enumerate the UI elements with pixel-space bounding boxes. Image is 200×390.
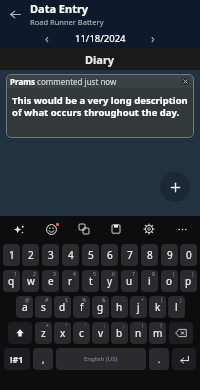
- staticText: 4: [73, 271, 76, 278]
- button[interactable]: b: [111, 322, 128, 344]
- button[interactable]: m: [149, 322, 166, 344]
- staticText: p: [185, 274, 192, 288]
- button[interactable]: English (US): [56, 348, 146, 370]
- staticText: u: [126, 274, 133, 288]
- button[interactable]: i: [141, 270, 158, 292]
- staticText: e: [48, 274, 54, 288]
- button[interactable]: 4: [62, 244, 79, 266]
- staticText: ‹: [45, 30, 49, 46]
- staticText: r: [68, 274, 73, 288]
- staticText: y: [107, 274, 113, 288]
- button[interactable]: [169, 322, 193, 344]
- staticText: 3: [48, 248, 54, 262]
- staticText: Diary: [85, 52, 115, 67]
- staticText: +: [141, 297, 144, 304]
- button[interactable]: 6: [101, 244, 118, 266]
- button[interactable]: w: [22, 270, 39, 292]
- button[interactable]: 9: [161, 244, 178, 266]
- staticText: #: [45, 297, 49, 304]
- staticText: 5: [88, 248, 94, 262]
- button[interactable]: o: [161, 270, 178, 292]
- button[interactable]: y: [101, 270, 118, 292]
- staticText: o: [166, 274, 173, 288]
- button[interactable]: Add entry: [160, 172, 190, 202]
- button[interactable]: 0: [180, 244, 197, 266]
- staticText: a: [22, 300, 28, 314]
- button[interactable]: l: [168, 296, 185, 318]
- staticText: f: [80, 300, 84, 314]
- staticText: t: [89, 274, 93, 288]
- staticText: 5: [93, 271, 96, 278]
- button[interactable]: j: [130, 296, 147, 318]
- staticText: s: [41, 300, 46, 314]
- staticText: m: [153, 326, 163, 340]
- button[interactable]: 5: [82, 244, 99, 266]
- button[interactable]: 7: [121, 244, 138, 266]
- button[interactable]: 2: [22, 244, 39, 266]
- button[interactable]: g: [92, 296, 109, 318]
- button[interactable]: Translate: [74, 219, 94, 239]
- staticText: 6: [107, 248, 113, 262]
- staticText: *: [46, 323, 49, 330]
- button[interactable]: r: [62, 270, 79, 292]
- staticText: w: [27, 274, 35, 288]
- staticText: 7: [127, 248, 133, 262]
- staticText: d: [59, 300, 66, 314]
- staticText: x: [60, 326, 66, 340]
- button[interactable]: h: [111, 296, 128, 318]
- button[interactable]: q: [3, 270, 20, 292]
- button[interactable]: Next day: [144, 29, 162, 47]
- button[interactable]: !#1: [4, 348, 30, 370]
- button[interactable]: Delete: [181, 77, 190, 86]
- staticText: ,: [42, 353, 45, 365]
- staticText: 8: [152, 271, 155, 278]
- staticText: 11/18/2024: [75, 32, 126, 45]
- button[interactable]: 8: [141, 244, 158, 266]
- button[interactable]: v: [92, 322, 109, 344]
- staticText: q: [8, 274, 15, 288]
- button[interactable]: Settings: [139, 219, 159, 239]
- staticText: -: [123, 297, 125, 304]
- button[interactable]: p: [180, 270, 197, 292]
- button[interactable]: s: [35, 296, 52, 318]
- button[interactable]: Magic compose: [8, 219, 28, 239]
- button[interactable]: [172, 348, 196, 370]
- button[interactable]: Clipboard: [106, 219, 126, 239]
- button[interactable]: e: [42, 270, 59, 292]
- staticText: ?: [160, 323, 163, 330]
- button[interactable]: 1: [3, 244, 20, 266]
- staticText: b: [116, 326, 123, 340]
- staticText: h: [116, 300, 123, 314]
- button[interactable]: ,: [33, 348, 53, 370]
- button[interactable]: 3: [42, 244, 59, 266]
- button[interactable]: a: [16, 296, 33, 318]
- button[interactable]: .: [149, 348, 169, 370]
- button[interactable]: t: [82, 270, 99, 292]
- button[interactable]: [8, 322, 32, 344]
- button[interactable]: More options: [172, 219, 192, 239]
- button[interactable]: Back: [0, 0, 30, 28]
- staticText: !#1: [10, 353, 24, 365]
- button[interactable]: z: [35, 322, 52, 344]
- button[interactable]: n: [130, 322, 147, 344]
- staticText: 2: [28, 248, 34, 262]
- button[interactable]: d: [54, 296, 71, 318]
- button[interactable]: k: [149, 296, 166, 318]
- staticText: Road Runner Battery: [30, 17, 104, 27]
- staticText: Data Entry: [30, 1, 89, 16]
- staticText: 9: [167, 248, 173, 262]
- staticText: i: [148, 274, 151, 288]
- button[interactable]: Previous day: [38, 29, 56, 47]
- staticText: commented just now: [35, 76, 117, 87]
- staticText: ): [180, 297, 182, 304]
- button[interactable]: Prams: [6, 74, 194, 138]
- staticText: $: [65, 297, 68, 304]
- button[interactable]: x: [54, 322, 71, 344]
- button[interactable]: Emoji: [41, 219, 61, 239]
- staticText: 1: [9, 248, 15, 262]
- staticText: k: [155, 300, 161, 314]
- button[interactable]: u: [121, 270, 138, 292]
- button[interactable]: c: [73, 322, 90, 344]
- button[interactable]: f: [73, 296, 90, 318]
- staticText: &: [102, 297, 106, 304]
